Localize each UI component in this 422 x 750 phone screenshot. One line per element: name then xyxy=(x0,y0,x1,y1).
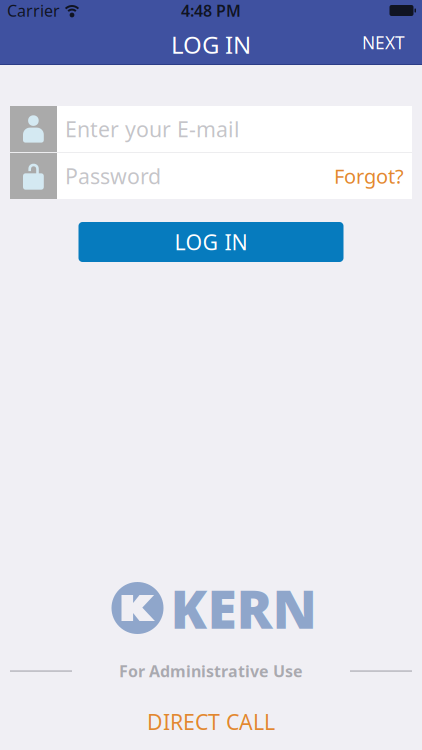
staticText: Carrier xyxy=(7,0,60,21)
staticText: LOG IN xyxy=(174,228,247,256)
staticText: KERN xyxy=(170,573,316,643)
staticText: DIRECT CALL xyxy=(147,708,275,736)
staticText: Forgot? xyxy=(334,163,404,189)
staticText: For Administrative Use xyxy=(119,660,303,682)
button[interactable]: DIRECT CALL xyxy=(131,702,291,742)
staticText: NEXT xyxy=(362,31,405,54)
staticText: LOG IN xyxy=(171,29,251,60)
staticText: Password xyxy=(65,162,161,190)
staticText: 4:48 PM xyxy=(181,0,241,21)
button[interactable]: Forgot? xyxy=(326,155,412,197)
staticText: Enter your E-mail xyxy=(65,115,240,143)
button[interactable]: NEXT xyxy=(354,25,413,60)
button[interactable]: LOG IN xyxy=(78,222,343,262)
